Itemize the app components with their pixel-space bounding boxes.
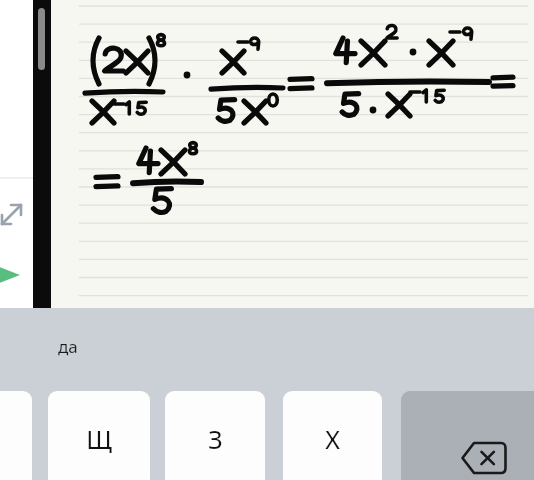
staticText: Щ <box>86 422 112 456</box>
button[interactable]: Key <box>0 391 32 480</box>
staticText: да <box>58 335 78 358</box>
button[interactable]: Backspace <box>401 391 534 480</box>
button[interactable]: З <box>165 391 265 480</box>
staticText: З <box>208 422 223 456</box>
button[interactable]: да <box>58 330 128 362</box>
button[interactable]: Expand <box>0 198 28 232</box>
staticText: Х <box>325 422 340 456</box>
button[interactable]: Щ <box>48 391 150 480</box>
button[interactable]: Х <box>283 391 382 480</box>
button[interactable]: Send <box>0 258 24 292</box>
